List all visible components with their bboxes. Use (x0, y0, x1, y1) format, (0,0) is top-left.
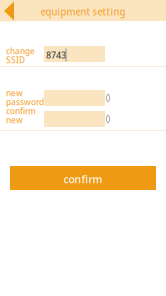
button[interactable]: Show confirmation password (103, 112, 113, 126)
staticText: equipment setting (40, 5, 125, 18)
staticText: new (6, 114, 23, 126)
staticText: SSID (6, 54, 25, 66)
staticText: confirm (63, 172, 102, 186)
staticText: password (6, 96, 44, 108)
button[interactable]: 8743 (46, 48, 86, 62)
staticText: confirm (6, 105, 36, 117)
button[interactable]: Show new password (103, 91, 113, 105)
button[interactable]: confirm (10, 166, 156, 190)
staticText: change (6, 45, 35, 57)
button[interactable]: Back (0, 0, 18, 21)
staticText: new (6, 87, 23, 99)
staticText: 8743 (46, 49, 66, 61)
